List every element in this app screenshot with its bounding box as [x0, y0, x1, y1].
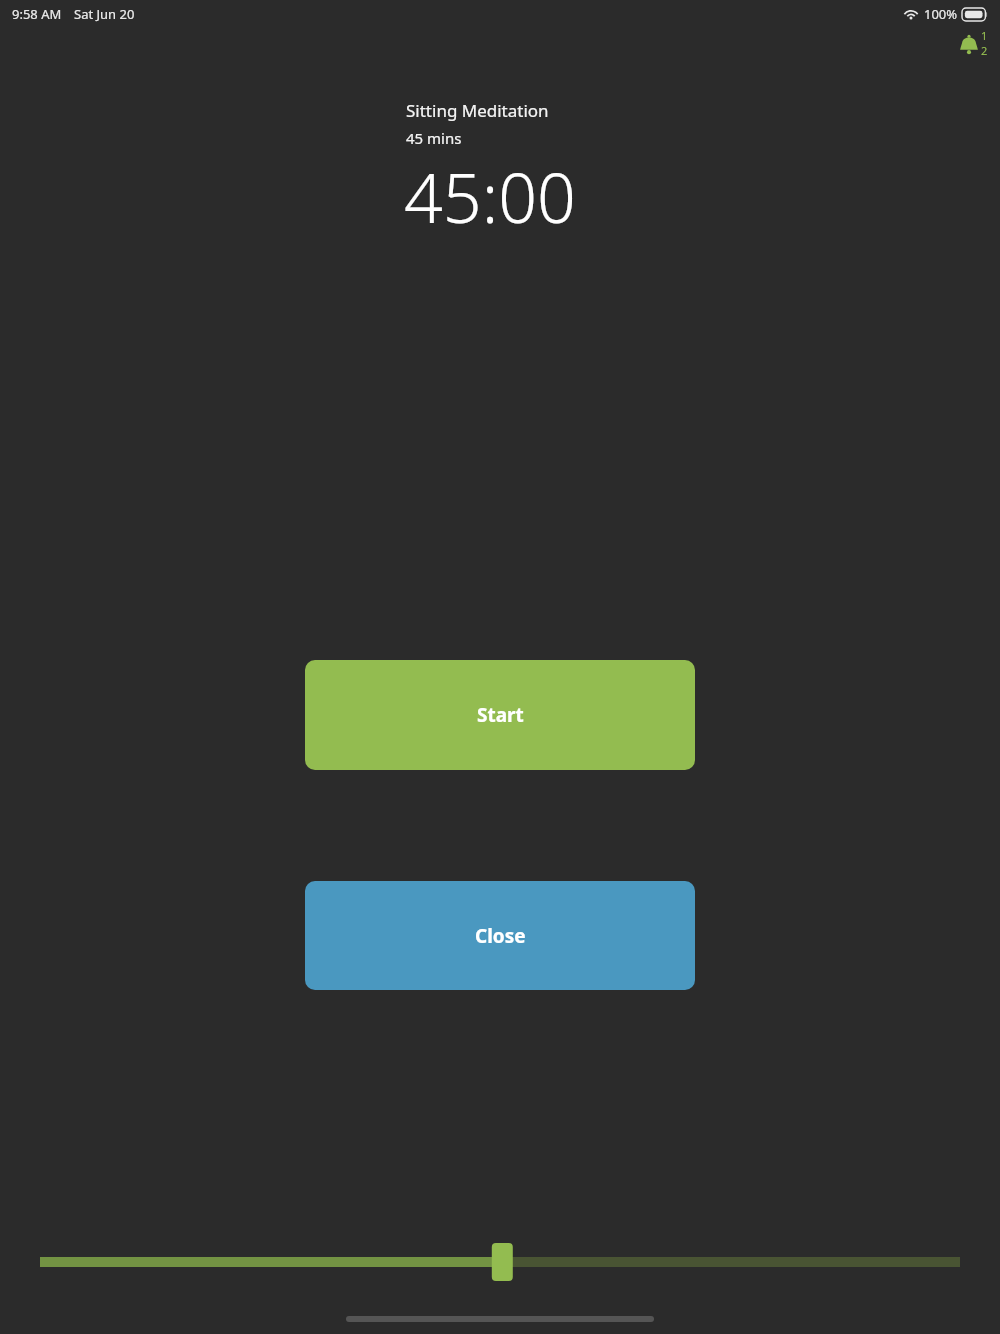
staticText: Start — [477, 702, 524, 728]
staticText: Sitting Meditation — [406, 99, 549, 122]
staticText: 45:00 — [404, 150, 576, 243]
staticText: Close — [475, 923, 526, 949]
staticText: 9:58 AM — [12, 5, 62, 23]
staticText: 100% — [924, 5, 958, 23]
button[interactable]: Bell 1 of 2 — [955, 28, 990, 60]
button[interactable]: Start — [305, 660, 695, 770]
button[interactable]: Close — [305, 881, 695, 990]
staticText: 2 — [981, 43, 988, 58]
staticText: 45 mins — [406, 128, 462, 148]
button[interactable]: Volume slider — [30, 1236, 970, 1288]
staticText: Sat Jun 20 — [74, 5, 135, 23]
staticText: 1 — [981, 28, 988, 43]
